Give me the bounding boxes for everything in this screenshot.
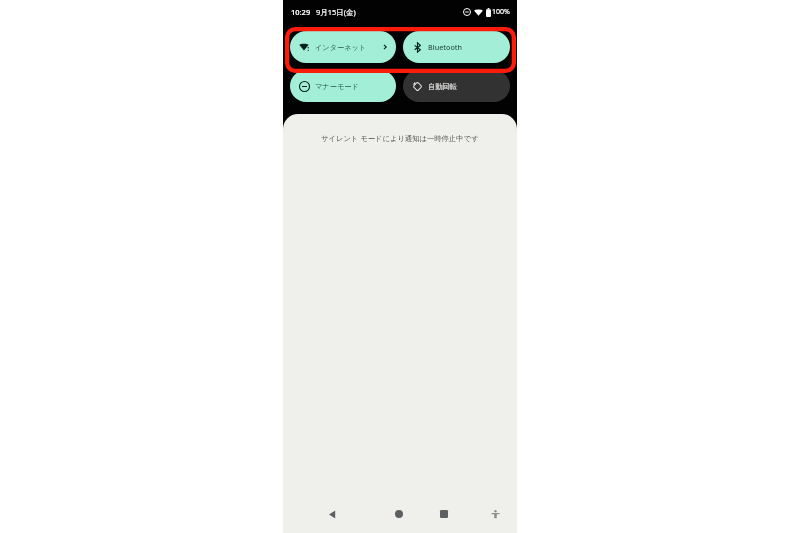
button[interactable]: Silent mode [290, 70, 396, 102]
staticText: 9月15日(金) [316, 7, 356, 17]
other: Internet [299, 42, 310, 53]
button[interactable]: Internet [290, 31, 396, 63]
staticText: 10:29 [291, 7, 311, 17]
button[interactable]: Recent apps [433, 503, 455, 525]
staticText: 自動回転 [428, 82, 503, 91]
other: Auto rotate [412, 81, 423, 92]
button[interactable]: Home [388, 503, 410, 525]
staticText: Bluetooth [428, 42, 503, 52]
staticText: サイレント モードにより通知は一時停止中です [321, 133, 479, 143]
button[interactable]: Auto rotate [403, 70, 510, 102]
other: Bluetooth [412, 42, 423, 53]
staticText: 100% [492, 7, 510, 17]
staticText: インターネット [315, 43, 381, 52]
button[interactable]: Accessibility [484, 503, 506, 525]
button[interactable]: Back [321, 503, 343, 525]
button[interactable]: Bluetooth [403, 31, 510, 63]
staticText: マナーモード [315, 82, 389, 91]
other: Silent mode [299, 81, 310, 92]
